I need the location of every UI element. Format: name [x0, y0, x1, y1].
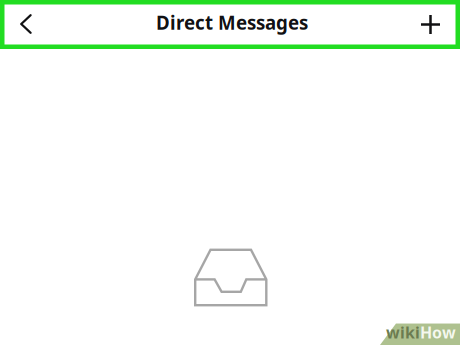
button[interactable]: New message	[408, 0, 452, 44]
staticText: How	[420, 322, 456, 343]
button[interactable]: Back	[8, 0, 52, 44]
staticText: wiki	[386, 322, 420, 343]
staticText: Direct Messages	[156, 10, 308, 35]
